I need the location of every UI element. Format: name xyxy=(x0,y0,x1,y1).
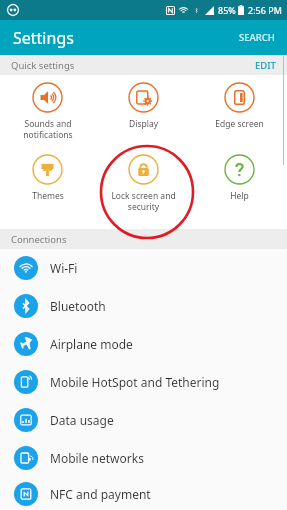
staticText: EDIT xyxy=(255,59,276,71)
staticText: 2:56 PM xyxy=(248,4,282,16)
staticText: Airplane mode xyxy=(50,336,133,352)
button[interactable]: Data usage xyxy=(0,401,287,439)
button[interactable]: Sounds and notifications xyxy=(0,75,95,147)
button[interactable]: Bluetooth xyxy=(0,287,287,325)
button[interactable]: Wi-Fi xyxy=(0,249,287,287)
button[interactable]: SEARCH xyxy=(227,25,287,50)
staticText: Mobile HotSpot and Tethering xyxy=(50,374,220,390)
button[interactable]: Airplane mode xyxy=(0,325,287,363)
staticText: Display xyxy=(129,118,158,130)
staticText: Connections xyxy=(11,233,67,246)
staticText: Settings xyxy=(13,27,74,49)
staticText: Help xyxy=(230,190,249,202)
staticText: NFC and payment xyxy=(50,486,151,502)
button[interactable]: Mobile HotSpot and Tethering xyxy=(0,363,287,401)
staticText: 85% xyxy=(218,4,236,16)
staticText: Bluetooth xyxy=(50,298,106,314)
staticText: Sounds and notifications xyxy=(23,118,73,140)
staticText: Themes xyxy=(32,190,64,202)
staticText: SEARCH xyxy=(239,31,275,44)
button[interactable]: Lock screen and security xyxy=(95,147,191,229)
button[interactable]: Display xyxy=(95,75,191,147)
staticText: Mobile networks xyxy=(50,450,144,466)
staticText: Wi-Fi xyxy=(50,260,78,276)
staticText: Lock screen and security xyxy=(111,190,176,212)
button[interactable]: EDIT xyxy=(244,55,287,75)
staticText: Quick settings xyxy=(11,59,75,72)
button[interactable]: Help xyxy=(191,147,287,229)
button[interactable]: Edge screen xyxy=(191,75,287,147)
staticText: Data usage xyxy=(50,412,114,428)
button[interactable]: Themes xyxy=(0,147,95,229)
button[interactable]: NFC and payment xyxy=(0,477,287,510)
button[interactable]: Settings xyxy=(0,20,287,55)
button[interactable]: Mobile networks xyxy=(0,439,287,477)
staticText: Edge screen xyxy=(215,118,264,130)
